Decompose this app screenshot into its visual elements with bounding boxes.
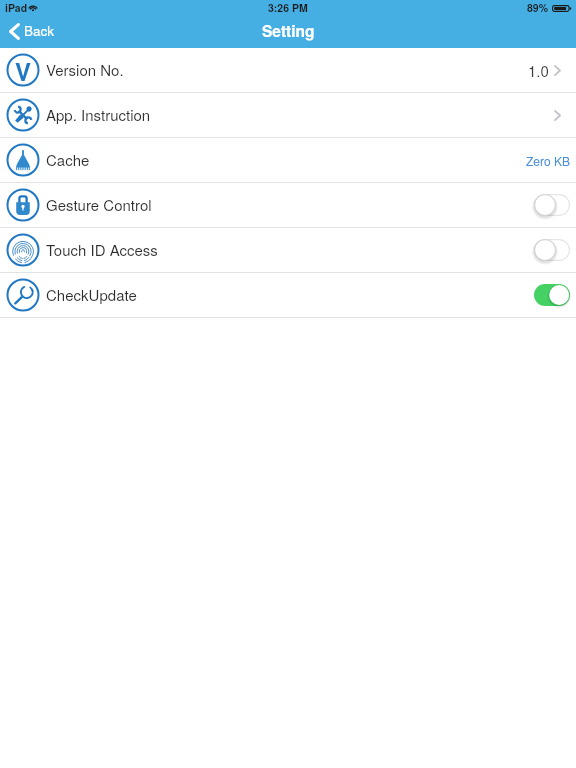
staticText: Version No. bbox=[46, 59, 124, 80]
button[interactable]: Gesture Control bbox=[0, 183, 576, 228]
button[interactable]: Back bbox=[0, 21, 67, 41]
staticText: Touch ID Access bbox=[46, 239, 158, 260]
button[interactable]: Switch on bbox=[534, 284, 570, 306]
staticText: Cache bbox=[46, 149, 90, 170]
staticText: CheckUpdate bbox=[46, 284, 137, 305]
staticText: Setting bbox=[262, 20, 315, 42]
button[interactable]: Touch ID Access bbox=[0, 228, 576, 273]
staticText: Zero KB bbox=[526, 152, 570, 169]
staticText: Back bbox=[24, 21, 55, 40]
button[interactable]: Switch off bbox=[534, 239, 570, 261]
staticText: V bbox=[15, 54, 32, 88]
button[interactable]: V bbox=[0, 48, 576, 93]
staticText: 89% bbox=[527, 0, 549, 15]
button[interactable]: CheckUpdate bbox=[0, 273, 576, 318]
button[interactable]: App. Instruction bbox=[0, 93, 576, 138]
staticText: iPad bbox=[5, 0, 28, 15]
staticText: 1.0 bbox=[528, 60, 549, 81]
staticText: 3:26 PM bbox=[268, 0, 308, 15]
staticText: Gesture Control bbox=[46, 194, 152, 215]
button[interactable]: Switch off bbox=[534, 194, 570, 216]
staticText: App. Instruction bbox=[46, 104, 151, 125]
button[interactable]: Cache bbox=[0, 138, 576, 183]
